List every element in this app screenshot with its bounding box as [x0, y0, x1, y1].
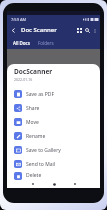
button[interactable]: Move	[7, 115, 100, 129]
staticText: 2022-01-16	[14, 77, 33, 82]
button[interactable]: More options	[91, 27, 98, 34]
staticText: DocScanner	[14, 67, 53, 76]
staticText: All Docs	[13, 40, 30, 46]
button[interactable]: Share	[7, 101, 100, 115]
staticText: Rename	[26, 133, 46, 140]
button[interactable]: Send to Mail	[7, 157, 100, 171]
button[interactable]: Recents	[72, 181, 78, 187]
button[interactable]: Save to Gallery	[7, 143, 100, 157]
staticText: Send to Mail	[26, 161, 56, 168]
staticText: Share	[26, 105, 40, 112]
button[interactable]: Save as PDF	[7, 87, 100, 101]
staticText: 7:59 AM	[11, 17, 27, 22]
button[interactable]: All Docs	[11, 38, 32, 48]
staticText: Doc Scanner	[21, 26, 57, 34]
button[interactable]: Folders	[36, 38, 56, 48]
button[interactable]: Search	[83, 26, 91, 34]
button[interactable]: Delete	[7, 171, 100, 180]
button[interactable]: Rename	[7, 129, 100, 143]
staticText: Folders	[38, 40, 54, 46]
button[interactable]: Back	[30, 181, 36, 187]
staticText: Save as PDF	[26, 91, 54, 98]
staticText: Delete	[26, 172, 42, 179]
staticText: Move	[26, 119, 39, 126]
staticText: Save to Gallery	[26, 147, 61, 154]
button[interactable]: Grid view	[75, 26, 83, 34]
button[interactable]: Home	[51, 181, 57, 187]
button[interactable]: Back	[9, 26, 18, 35]
